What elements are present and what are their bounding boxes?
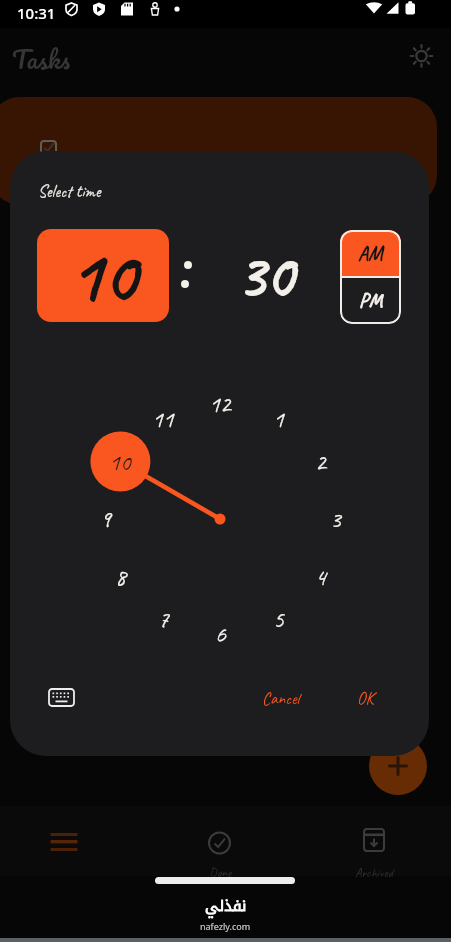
button[interactable]: 2 xyxy=(300,442,340,482)
staticText: Cancel xyxy=(262,688,300,709)
button[interactable]: AM xyxy=(340,230,401,277)
button[interactable]: 3 xyxy=(315,499,355,539)
staticText: 10:31 xyxy=(17,3,56,23)
staticText: 30 xyxy=(237,236,294,315)
button[interactable] xyxy=(407,41,437,71)
staticText: 3 xyxy=(330,504,341,534)
button[interactable]: Archived xyxy=(344,826,404,876)
button[interactable]: Cancel xyxy=(246,680,316,716)
staticText: 2 xyxy=(315,447,326,477)
staticText: 7 xyxy=(158,604,169,634)
button[interactable]: 10 xyxy=(37,229,169,322)
button[interactable]: 5 xyxy=(258,599,298,639)
staticText: 8 xyxy=(115,562,126,592)
button[interactable]: PM xyxy=(340,277,401,324)
staticText: 10 xyxy=(109,447,131,477)
button[interactable]: OK xyxy=(336,680,394,716)
button[interactable]: 4 xyxy=(300,557,340,597)
staticText: PM xyxy=(359,288,383,313)
button[interactable]: 8 xyxy=(100,557,140,597)
button[interactable]: Done xyxy=(190,826,250,876)
staticText: 12 xyxy=(209,389,231,419)
staticText: 9 xyxy=(100,504,111,534)
button[interactable] xyxy=(40,680,84,716)
staticText: Tasks xyxy=(12,38,71,80)
button[interactable] xyxy=(38,820,90,864)
staticText: 4 xyxy=(315,562,326,592)
staticText: Done xyxy=(209,865,232,881)
staticText: 6 xyxy=(215,619,226,649)
staticText: AM xyxy=(358,241,383,266)
staticText: 10 xyxy=(70,229,137,322)
button[interactable]: 6 xyxy=(200,614,240,654)
staticText: OK xyxy=(357,688,374,709)
staticText: 5 xyxy=(273,604,284,634)
button[interactable]: 1 xyxy=(258,399,298,439)
button[interactable] xyxy=(369,737,427,795)
button[interactable]: 9 xyxy=(85,499,125,539)
button[interactable]: 12 xyxy=(200,384,240,424)
staticText: نفذلي xyxy=(205,892,247,920)
button[interactable]: 7 xyxy=(143,599,183,639)
button[interactable]: 30 xyxy=(215,229,315,322)
staticText: Select time xyxy=(38,181,101,202)
staticText: Archived xyxy=(355,865,393,881)
staticText: nafezly.com xyxy=(200,920,251,932)
staticText: 1 xyxy=(273,404,284,434)
staticText: 11 xyxy=(152,404,174,434)
button[interactable]: 11 xyxy=(143,399,183,439)
button[interactable]: 10 xyxy=(100,442,140,482)
